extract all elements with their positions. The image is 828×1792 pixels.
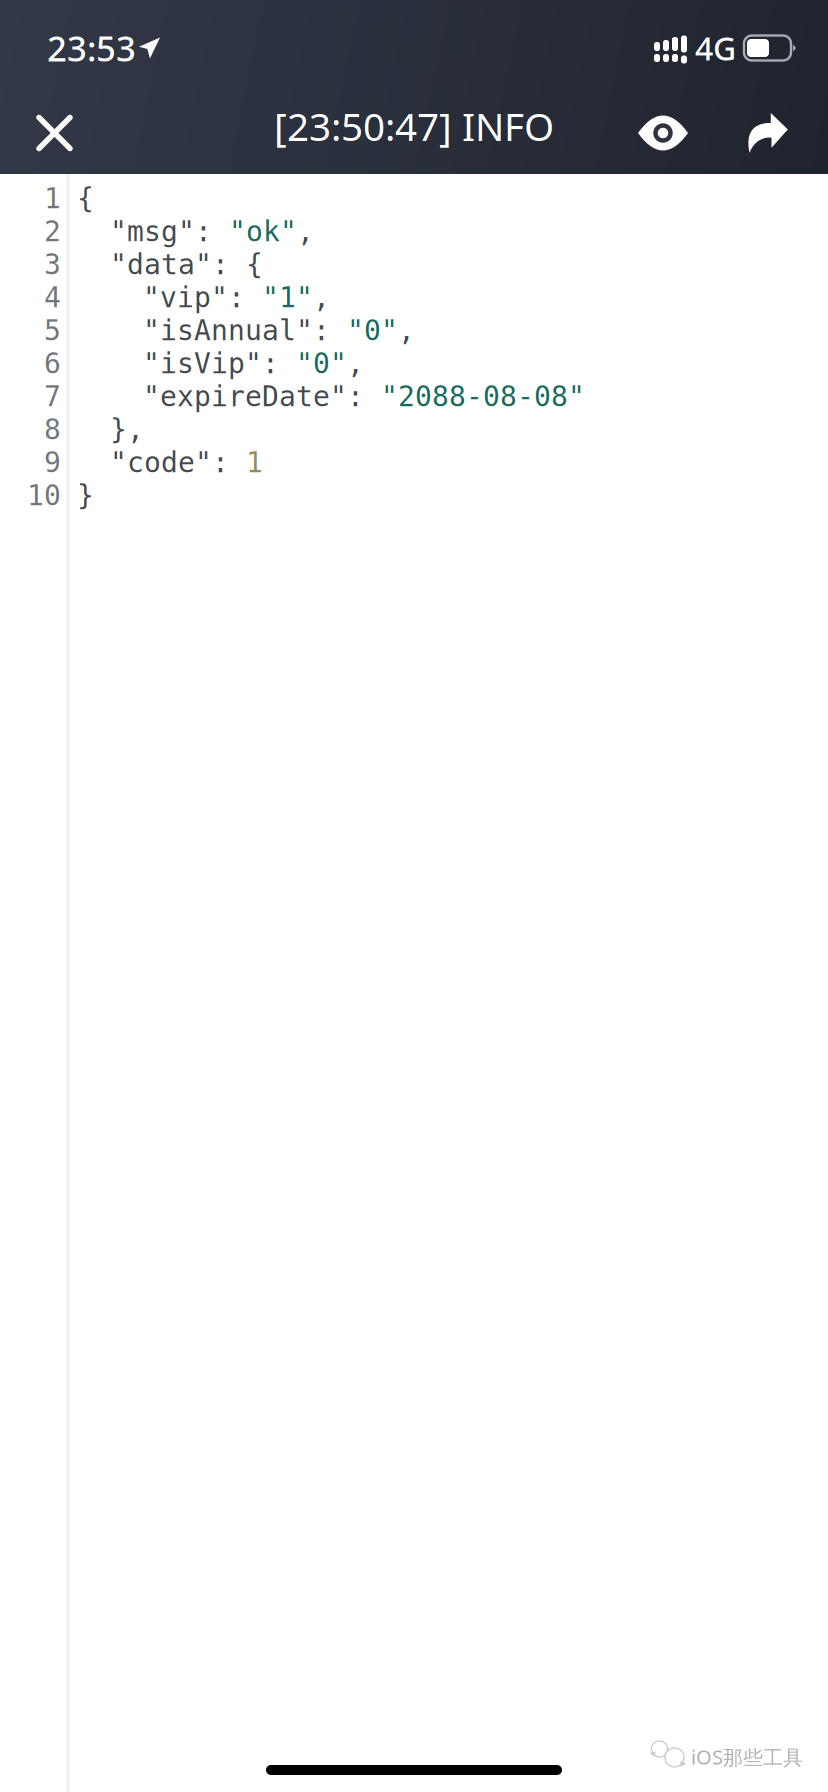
staticText: 5 — [44, 315, 61, 346]
staticText: 1 — [44, 183, 61, 214]
staticText: , — [398, 315, 415, 346]
staticText: iOS那些工具 — [691, 1743, 803, 1770]
staticText: 8 — [44, 414, 61, 445]
staticText: 6 — [44, 348, 61, 379]
staticText: "code": — [110, 447, 246, 478]
staticText: "1" — [262, 282, 313, 313]
staticText: "isVip": — [143, 348, 296, 379]
staticText: 3 — [44, 249, 61, 280]
staticText: "isAnnual": — [143, 315, 347, 346]
staticText: "0" — [347, 315, 398, 346]
staticText: , — [297, 216, 314, 247]
staticText: 7 — [44, 381, 61, 412]
staticText: "expireDate": — [143, 381, 381, 412]
staticText: 10 — [27, 480, 61, 511]
staticText: "vip": — [143, 282, 262, 313]
staticText: { — [77, 183, 94, 214]
button[interactable]: Preview — [621, 92, 733, 174]
staticText: 4G — [695, 27, 736, 69]
staticText: 4 — [44, 282, 61, 313]
staticText: 1 — [246, 447, 263, 478]
staticText: "ok" — [229, 216, 297, 247]
staticText: , — [313, 282, 330, 313]
staticText: "0" — [296, 348, 347, 379]
button[interactable]: Share — [733, 92, 801, 174]
staticText: } — [77, 480, 94, 511]
staticText: "data": { — [110, 249, 263, 280]
staticText: 2 — [44, 216, 61, 247]
staticText: }, — [110, 414, 144, 445]
staticText: 23:53 — [47, 25, 136, 71]
staticText: [23:50:47] INFO — [274, 100, 554, 152]
staticText: "msg": — [110, 216, 229, 247]
button[interactable]: Close — [17, 92, 92, 173]
staticText: 9 — [44, 447, 61, 478]
staticText: "2088-08-08" — [381, 381, 585, 412]
staticText: , — [347, 348, 364, 379]
